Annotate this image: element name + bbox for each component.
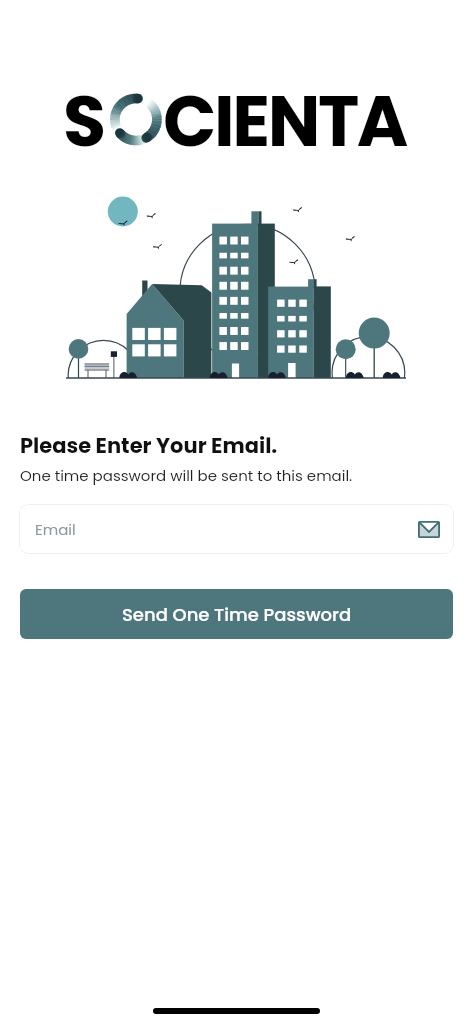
staticText: One time password will be sent to this e… — [20, 465, 353, 486]
staticText: Send One Time Password — [122, 602, 352, 627]
staticText: CIENTA — [163, 72, 407, 170]
button[interactable]: Email — [19, 504, 454, 554]
other: Email — [418, 521, 440, 538]
staticText: Please Enter Your Email. — [20, 431, 278, 460]
staticText: Email — [35, 519, 76, 540]
button[interactable]: Send One Time Password — [20, 589, 453, 639]
staticText: S — [63, 72, 107, 170]
